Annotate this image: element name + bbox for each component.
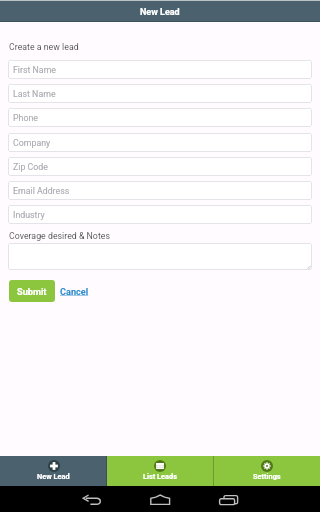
button[interactable]: Submit: [9, 280, 55, 302]
staticText: Company: [13, 138, 51, 148]
button[interactable]: Cancel: [55, 282, 94, 301]
button[interactable]: Zip Code: [8, 157, 312, 176]
button[interactable]: [8, 243, 312, 270]
staticText: Coverage desired & Notes: [9, 231, 110, 241]
staticText: Phone: [13, 113, 38, 123]
button[interactable]: Phone: [8, 108, 312, 127]
button[interactable]: List Leads: [107, 456, 213, 486]
button[interactable]: Last Name: [8, 84, 312, 103]
staticText: Zip Code: [13, 162, 48, 172]
button[interactable]: Email Address: [8, 181, 312, 200]
staticText: Industry: [13, 210, 45, 220]
staticText: Settings: [253, 472, 281, 481]
staticText: Email Address: [13, 186, 70, 196]
button[interactable]: Industry: [8, 205, 312, 224]
button[interactable]: Settings: [214, 456, 320, 486]
staticText: List Leads: [143, 472, 177, 481]
staticText: First Name: [13, 65, 57, 75]
button[interactable]: Recents: [194, 486, 262, 512]
staticText: New Lead: [37, 472, 70, 481]
staticText: Last Name: [13, 89, 56, 99]
staticText: Submit: [17, 286, 47, 297]
button[interactable]: New Lead: [0, 456, 106, 486]
staticText: Create a new lead: [9, 42, 79, 52]
button[interactable]: Back: [58, 486, 126, 512]
button[interactable]: Company: [8, 133, 312, 152]
button[interactable]: First Name: [8, 60, 312, 79]
staticText: New Lead: [140, 7, 180, 18]
staticText: Cancel: [60, 286, 89, 297]
button[interactable]: Home: [126, 486, 194, 512]
